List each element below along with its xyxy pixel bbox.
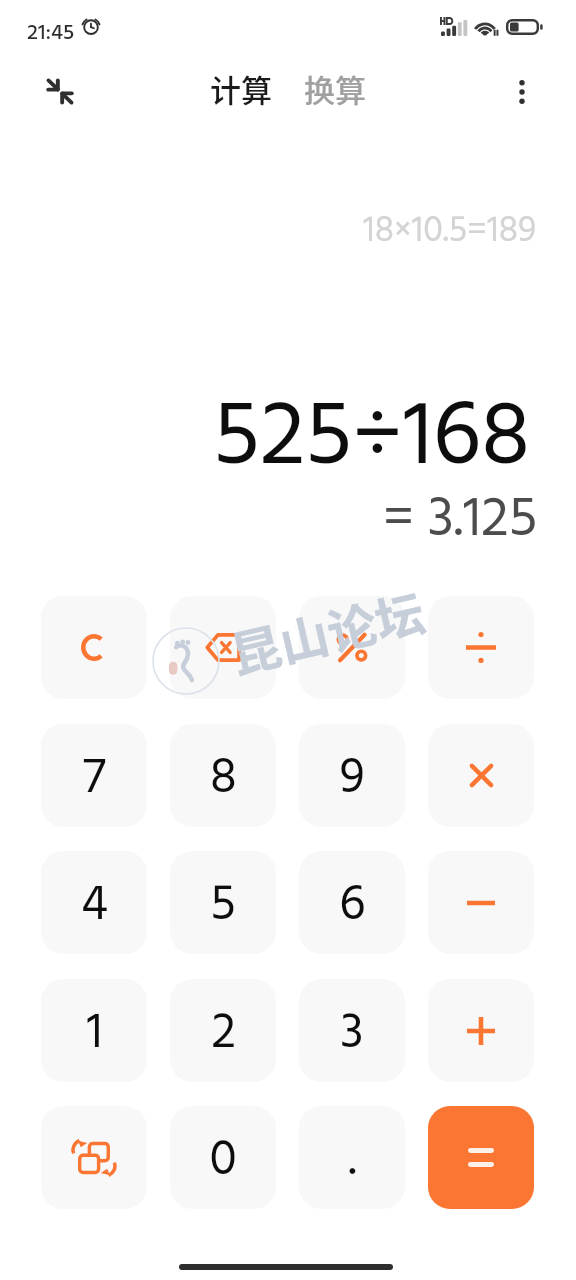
staticText: 0	[209, 1121, 237, 1201]
staticText: = 3.125	[383, 476, 538, 566]
button[interactable]: 0	[170, 1106, 276, 1209]
button[interactable]: 18×10.5=189	[363, 203, 537, 261]
button[interactable]: More options	[497, 67, 547, 117]
button[interactable]: 5	[170, 851, 276, 954]
staticText: 2	[211, 994, 236, 1074]
button[interactable]: Unit conversion	[41, 1106, 147, 1209]
button[interactable]: 7	[41, 724, 147, 827]
staticText: 525÷168	[213, 366, 531, 513]
button[interactable]	[428, 596, 534, 699]
button[interactable]	[428, 851, 534, 954]
button[interactable]	[299, 596, 405, 699]
staticText: 3	[340, 994, 364, 1074]
staticText: 7	[83, 739, 106, 819]
button[interactable]: 2	[170, 979, 276, 1082]
button[interactable]: 6	[299, 851, 405, 954]
staticText: 8	[210, 739, 237, 819]
button[interactable]	[428, 1106, 534, 1209]
staticText: 6	[339, 866, 366, 946]
staticText: .	[348, 1121, 357, 1201]
staticText: 4	[81, 866, 108, 946]
button[interactable]	[428, 724, 534, 827]
staticText: 昆山论坛	[224, 574, 432, 687]
button[interactable]: .	[299, 1106, 405, 1209]
button[interactable]: Collapse	[35, 66, 85, 116]
staticText: 换算	[304, 66, 366, 111]
button[interactable]: 8	[170, 724, 276, 827]
button[interactable]: 4	[41, 851, 147, 954]
staticText: 9	[339, 739, 365, 819]
staticText: 1	[86, 994, 103, 1074]
button[interactable]: 换算	[296, 56, 374, 121]
button[interactable]	[41, 596, 147, 699]
staticText: 5	[210, 866, 236, 946]
button[interactable]: 1	[41, 979, 147, 1082]
button[interactable]: 9	[299, 724, 405, 827]
staticText: 计算	[210, 66, 272, 111]
staticText: 21:45	[27, 16, 75, 51]
button[interactable]	[428, 979, 534, 1082]
button[interactable]: 3	[299, 979, 405, 1082]
button[interactable]: 计算	[202, 56, 280, 121]
button[interactable]: Delete	[170, 596, 276, 699]
